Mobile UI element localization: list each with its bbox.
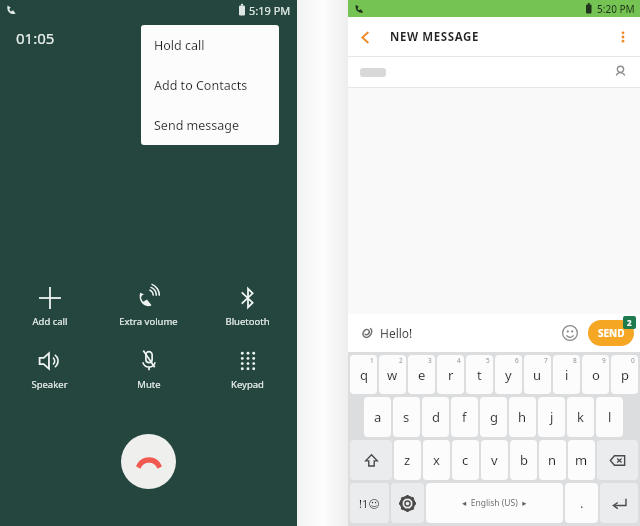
staticText: 5 [486,356,490,365]
button[interactable]: SEND [588,320,634,346]
staticText: Keypad [231,378,264,391]
staticText: d [432,408,440,426]
staticText: SEND [598,326,625,340]
button[interactable]: Add to Contacts [141,65,279,105]
staticText: s [403,408,410,426]
button[interactable]: c [452,440,479,480]
button[interactable]: Speaker [0,348,99,391]
staticText: w [387,366,398,384]
button[interactable]: x [423,440,450,480]
staticText: 8 [573,356,577,365]
button[interactable]: i [553,355,580,394]
button[interactable]: Add recipient [348,57,640,87]
button[interactable]: Keypad [198,348,297,391]
button[interactable]: e [408,355,435,394]
button[interactable]: Back [348,20,382,54]
button[interactable]: z [394,440,421,480]
button[interactable]: b [510,440,537,480]
staticText: Send message [154,117,240,134]
button[interactable]: l [596,397,623,437]
staticText: Add call [32,315,68,328]
staticText: n [548,451,557,469]
staticText: q [360,366,368,384]
button[interactable]: h [509,397,536,437]
staticText: x [433,451,440,469]
button[interactable]: Send message [141,105,279,145]
staticText: i [565,366,569,384]
button[interactable]: Bluetooth [198,285,297,328]
staticText: y [505,366,512,384]
staticText: a [374,408,382,426]
button[interactable]: s [393,397,420,437]
button[interactable]: g [480,397,507,437]
button[interactable]: Settings [391,483,424,523]
staticText: m [575,451,588,469]
staticText: Speaker [31,378,68,391]
button[interactable]: Enter [600,483,638,523]
staticText: c [462,451,469,469]
button[interactable]: ◂ English (US) ▸ [426,483,563,523]
staticText: Bluetooth [225,315,270,328]
staticText: l [608,408,612,426]
button[interactable]: . [565,483,598,523]
staticText: 6 [515,356,519,365]
button[interactable]: Mute [99,348,198,391]
staticText: ◂ English (US) ▸ [462,497,527,509]
staticText: 9 [602,356,606,365]
staticText: . [580,494,584,512]
staticText: 3 [428,356,432,365]
button[interactable]: d [422,397,449,437]
button[interactable]: Extra volume [99,285,198,328]
staticText: 5:20 PM [597,2,635,16]
button[interactable]: y [495,355,522,394]
button[interactable]: f [451,397,478,437]
staticText: 2 [627,317,632,328]
staticText: Hold call [154,37,205,54]
staticText: e [418,366,426,384]
staticText: v [491,451,498,469]
button[interactable]: Add call [0,285,99,328]
staticText: j [550,408,554,426]
button[interactable]: v [481,440,508,480]
staticText: !1☺ [359,496,380,511]
button[interactable]: j [538,397,565,437]
button[interactable]: !1☺ [350,483,389,523]
button[interactable]: m [568,440,595,480]
button[interactable]: a [364,397,391,437]
button[interactable]: n [539,440,566,480]
staticText: b [520,451,528,469]
staticText: z [404,451,411,469]
button[interactable]: o [582,355,609,394]
button[interactable]: w [379,355,406,394]
button[interactable]: k [567,397,594,437]
staticText: 1 [370,356,374,365]
staticText: t [477,366,482,384]
button[interactable]: Add recipient [608,60,632,84]
button[interactable]: t [466,355,493,394]
button[interactable]: Backspace [597,440,638,480]
button[interactable]: Shift [350,440,392,480]
staticText: k [577,408,584,426]
staticText: g [490,408,498,426]
button[interactable]: Hold call [141,25,279,65]
button[interactable]: More options [606,20,640,54]
staticText: NEW MESSAGE [390,29,479,45]
staticText: p [621,366,629,384]
staticText: Hello! [380,325,413,341]
staticText: 7 [544,356,548,365]
button[interactable]: q [350,355,377,394]
button[interactable]: End call [121,434,176,489]
staticText: r [448,366,454,384]
button[interactable]: p [611,355,638,394]
staticText: Extra volume [119,315,178,328]
staticText: 2 [399,356,403,365]
staticText: o [592,366,600,384]
button[interactable]: Attach [354,320,380,346]
button[interactable]: r [437,355,464,394]
button[interactable]: u [524,355,551,394]
staticText: 0 [631,356,635,365]
staticText: Add to Contacts [154,77,248,94]
button[interactable]: Emoji [558,321,582,345]
staticText: 5:19 PM [249,3,291,18]
staticText: h [518,408,527,426]
